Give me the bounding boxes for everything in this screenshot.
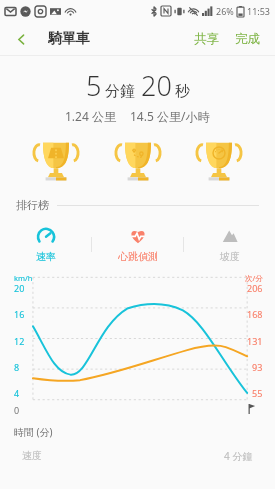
button[interactable]: 共享 — [189, 28, 224, 50]
staticText: 5 — [86, 67, 102, 104]
staticText: 分鐘 — [105, 82, 135, 101]
staticText: 坡度 — [220, 250, 240, 263]
button[interactable]: 完成 — [230, 28, 265, 50]
staticText: km/h — [14, 273, 33, 283]
staticText: 131 — [247, 335, 263, 347]
staticText: 11:53 — [247, 5, 271, 17]
staticText: 55 — [252, 387, 263, 399]
button[interactable]: 速度 — [14, 449, 261, 463]
staticText: 騎單車 — [48, 30, 90, 48]
staticText: 時間 (分) — [14, 425, 53, 439]
staticText: 0 — [14, 404, 20, 416]
staticText: 共享 — [194, 31, 219, 47]
button[interactable]: 速率 — [0, 222, 91, 267]
staticText: 93 — [252, 361, 263, 373]
staticText: 20 — [141, 67, 172, 104]
button[interactable]: 心跳偵測 — [92, 222, 183, 267]
staticText: 14.5 公里/小時 — [130, 108, 210, 124]
staticText: 心跳偵測 — [118, 250, 158, 263]
staticText: 次/分 — [245, 273, 263, 283]
staticText: 8 — [14, 361, 20, 373]
staticText: 4 分鐘 — [224, 449, 253, 463]
staticText: 16 — [14, 308, 25, 320]
staticText: 1.24 公里 — [65, 108, 116, 124]
staticText: 速度 — [22, 449, 42, 462]
button[interactable]: 坡度 — [184, 222, 275, 267]
button[interactable]: Back — [8, 26, 34, 52]
staticText: 168 — [247, 308, 263, 320]
button[interactable]: Achievement badge — [110, 136, 166, 188]
button[interactable]: Achievement badge — [28, 136, 84, 188]
button[interactable]: Achievement badge — [191, 136, 247, 188]
staticText: 20 — [14, 282, 25, 294]
staticText: 完成 — [235, 31, 260, 47]
staticText: 秒 — [175, 82, 190, 101]
staticText: 12 — [14, 335, 25, 347]
staticText: 速率 — [36, 250, 56, 263]
staticText: 206 — [247, 282, 263, 294]
staticText: 26% — [216, 5, 234, 17]
staticText: 排行榜 — [16, 198, 49, 212]
staticText: 4 — [14, 387, 20, 399]
